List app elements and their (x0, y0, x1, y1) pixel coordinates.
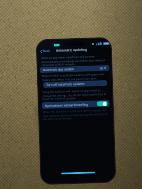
staticText: Automatic updating (56, 48, 88, 53)
staticText: Back (43, 49, 51, 53)
button[interactable]: Back (39, 49, 52, 53)
staticText: Using this function will require an app … (42, 88, 108, 100)
staticText: Automatic app update (43, 67, 75, 72)
staticText: When an app needs updating it will be do… (41, 54, 106, 66)
staticText: When this function is active your device… (43, 108, 108, 120)
staticText: When no Wi-Fi is available updates will … (42, 72, 107, 81)
button[interactable]: Automatic app update (39, 65, 110, 73)
button[interactable]: Optimaliseer netwerkinstelling (42, 100, 110, 109)
staticText: Optimaliseer netwerkinstelling (45, 103, 89, 108)
staticText: Turn off automatic updates (46, 82, 85, 87)
button[interactable]: Turn off automatic updates (43, 80, 107, 88)
staticText: 36 % (99, 66, 107, 70)
